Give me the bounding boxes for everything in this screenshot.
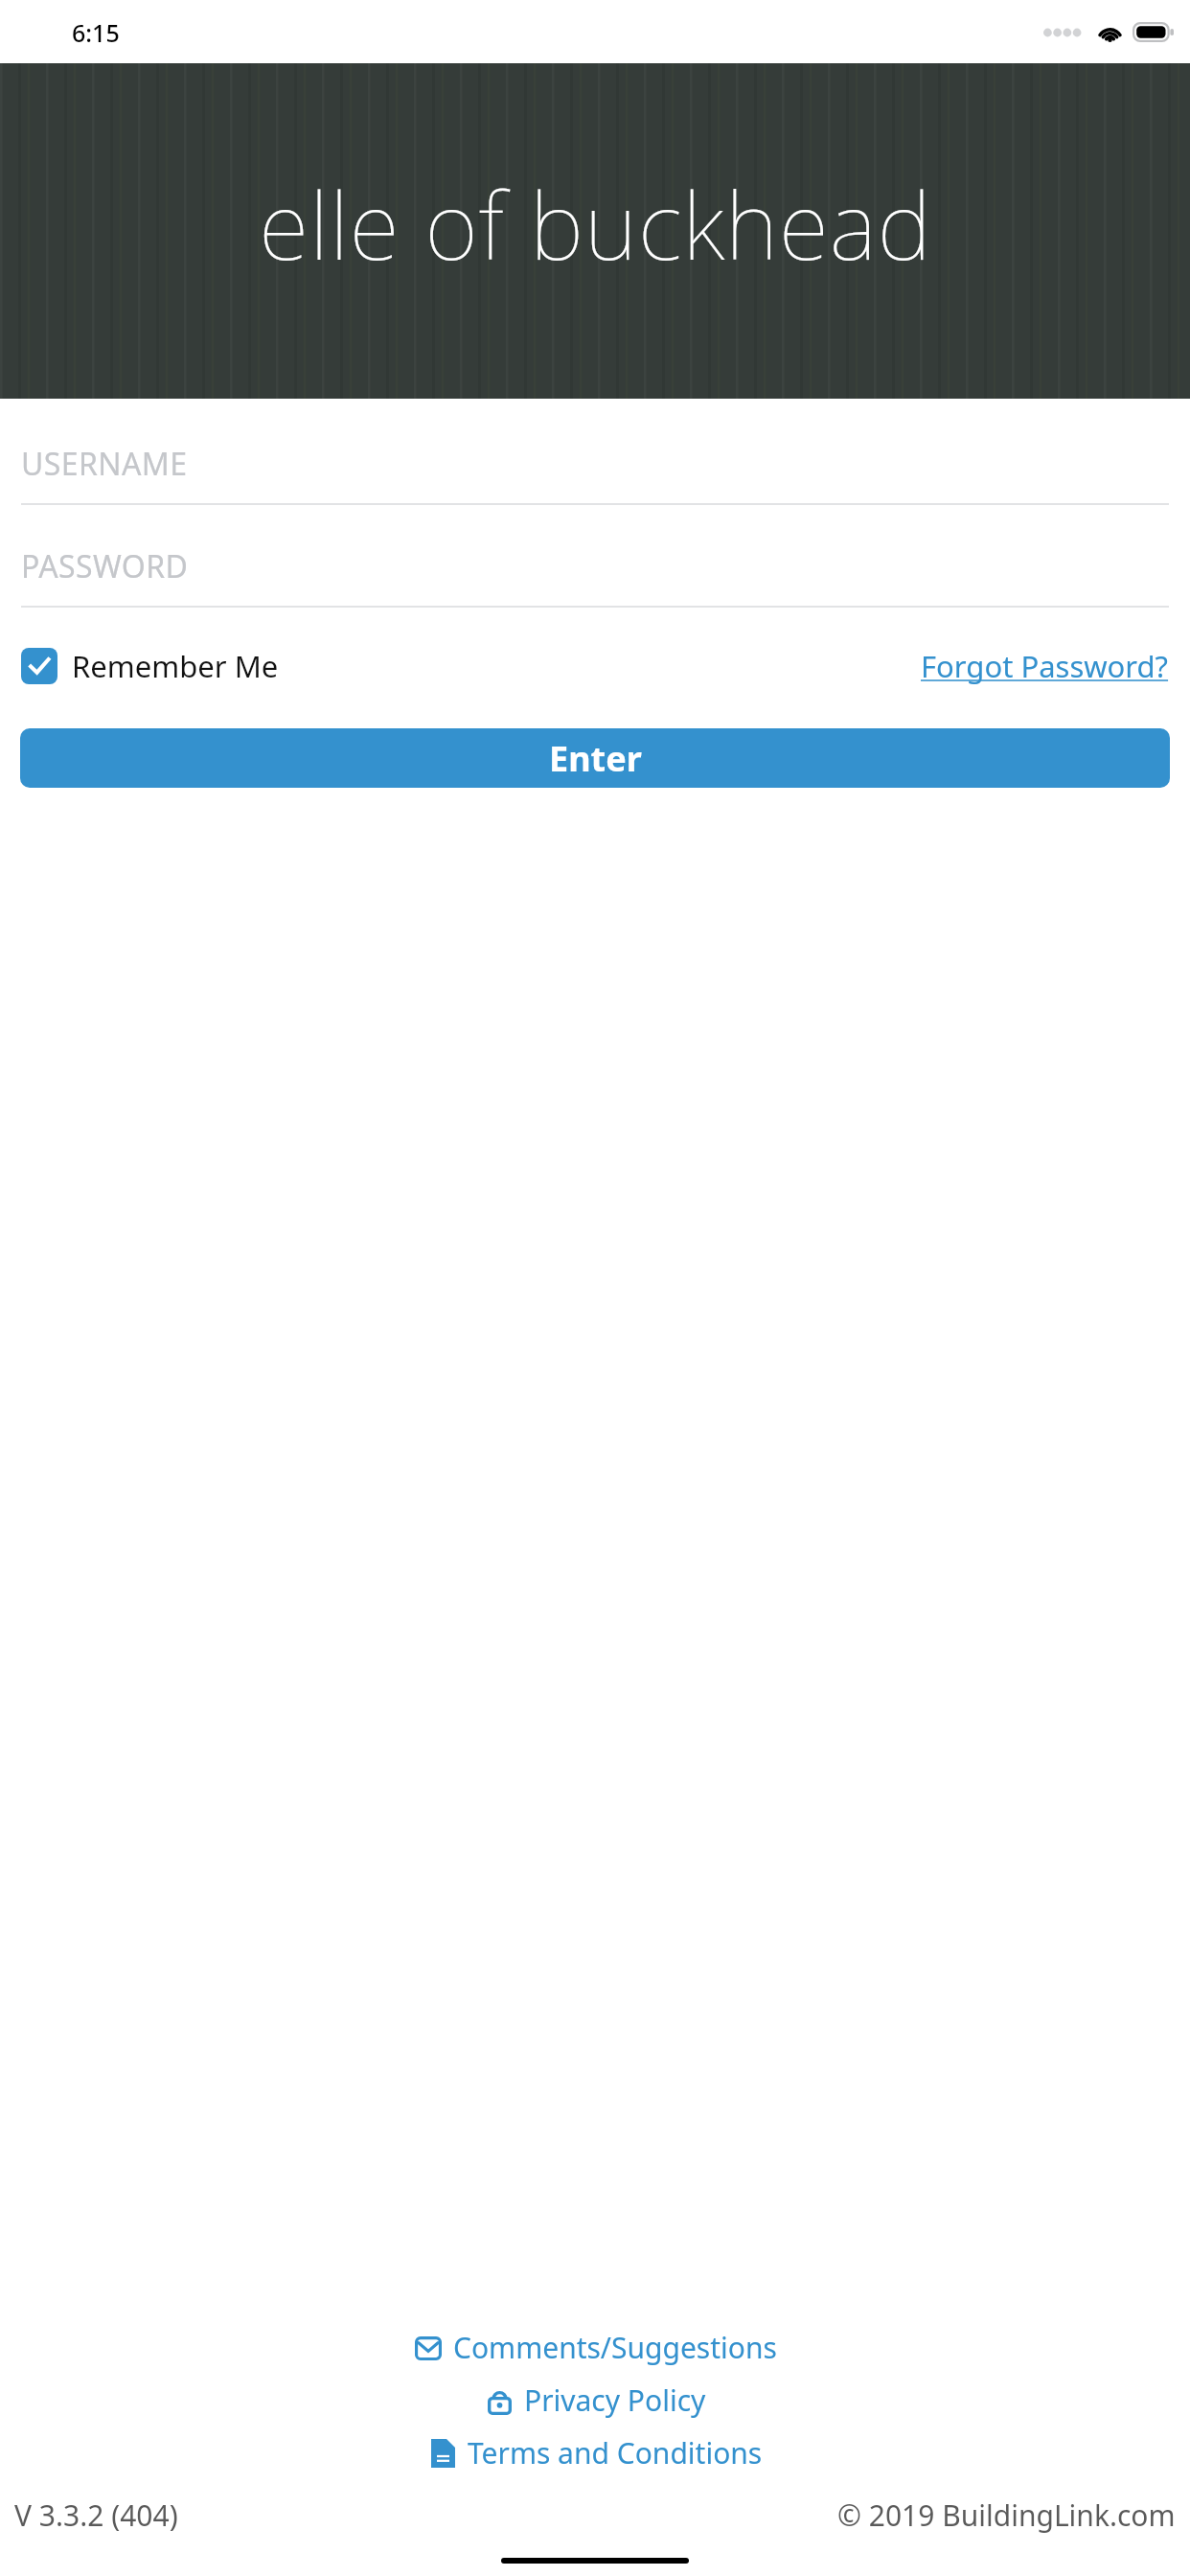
staticText: 6:15 (72, 16, 120, 49)
other: Privacy policy (488, 2387, 512, 2415)
button[interactable]: USERNAME (21, 443, 1169, 505)
button[interactable]: Forgot Password? (921, 646, 1169, 686)
staticText: Privacy Policy (524, 2380, 706, 2420)
staticText: PASSWORD (21, 545, 189, 587)
button[interactable]: Comments and suggestions (410, 2326, 781, 2369)
staticText: Remember Me (72, 646, 279, 686)
staticText: © 2019 BuildingLink.com (837, 2495, 1176, 2535)
other: Comments and suggestions (415, 2336, 442, 2360)
staticText: USERNAME (21, 443, 188, 485)
button[interactable]: Enter (20, 728, 1170, 788)
button[interactable]: Remember Me (21, 646, 285, 686)
button[interactable]: Privacy policy (481, 2379, 710, 2422)
button[interactable]: PASSWORD (21, 545, 1169, 608)
staticText: Forgot Password? (921, 646, 1169, 686)
staticText: Comments/Suggestions (453, 2328, 777, 2367)
staticText: Enter (549, 735, 642, 782)
staticText: V 3.3.2 (404) (14, 2495, 178, 2535)
staticText: elle of buckhead (259, 161, 932, 287)
button[interactable]: Terms and conditions (424, 2431, 767, 2474)
staticText: Terms and Conditions (468, 2433, 763, 2472)
other: Terms and conditions (431, 2439, 455, 2468)
